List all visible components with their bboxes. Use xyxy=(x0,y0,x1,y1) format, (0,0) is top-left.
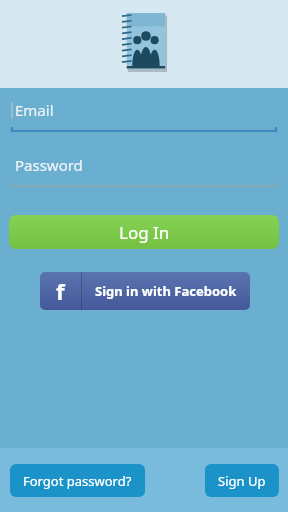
staticText: Sign in with Facebook xyxy=(95,282,237,300)
button[interactable]: Email xyxy=(11,100,277,133)
staticText: Password xyxy=(15,155,83,175)
button[interactable]: Log In xyxy=(9,215,279,249)
staticText: Log In xyxy=(119,221,170,244)
button[interactable]: Password xyxy=(11,155,277,188)
button[interactable]: Sign Up xyxy=(205,464,279,497)
staticText: f xyxy=(56,276,65,306)
staticText: Email xyxy=(15,100,54,120)
other: ContactsWare logo xyxy=(121,12,169,72)
staticText: Sign Up xyxy=(218,472,266,490)
button[interactable]: f xyxy=(40,272,250,310)
button[interactable]: Forgot password? xyxy=(10,464,145,497)
staticText: Forgot password? xyxy=(23,472,132,490)
